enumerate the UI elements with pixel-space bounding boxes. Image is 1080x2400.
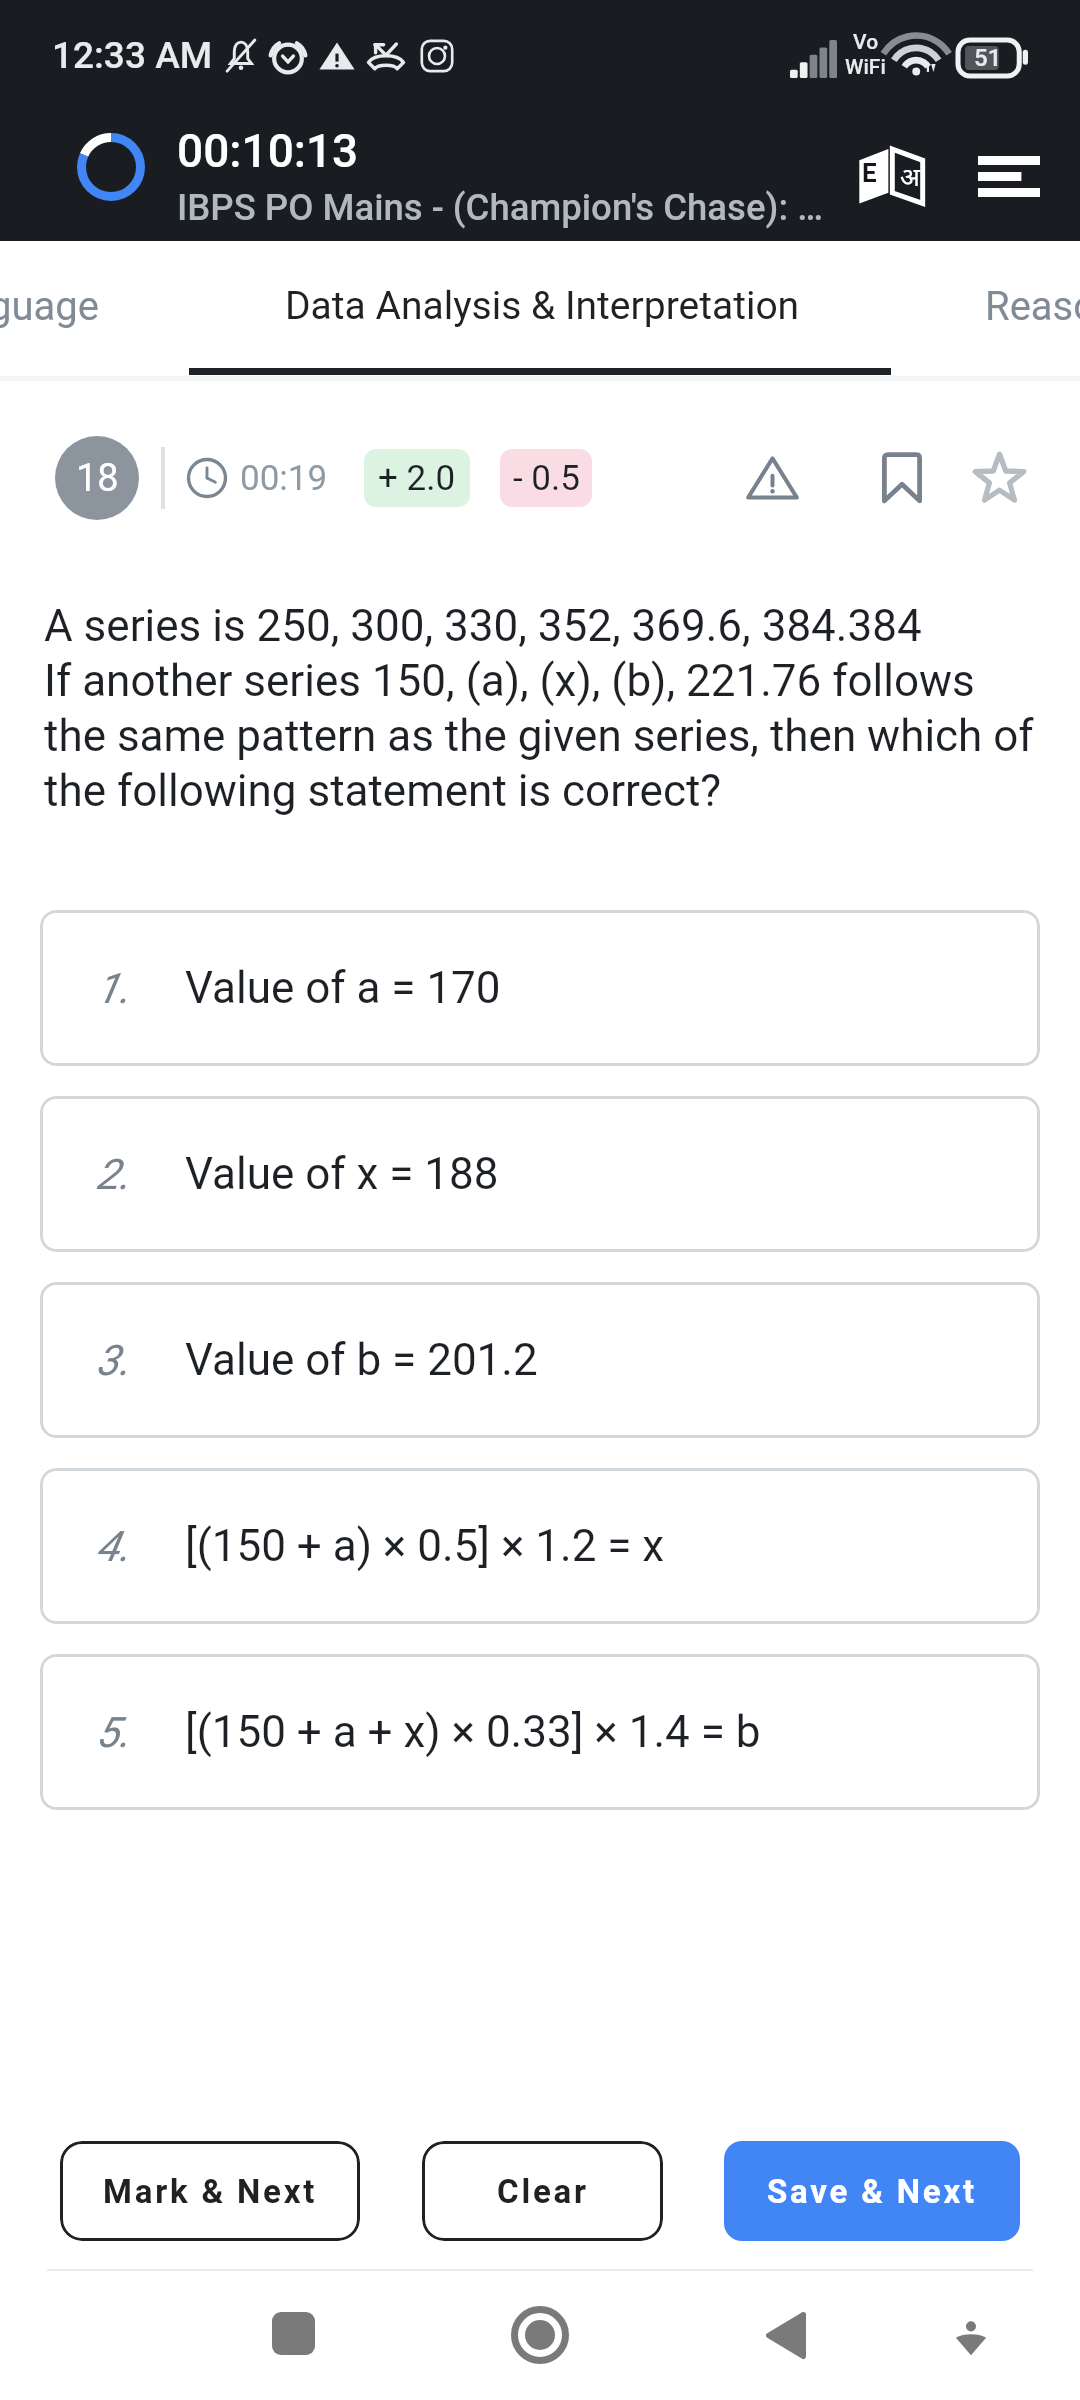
staticText: 00:19 — [240, 458, 328, 499]
staticText: 51 — [974, 44, 1002, 72]
button[interactable]: Mark & Next — [60, 2141, 360, 2241]
staticText: Data Analysis & Interpretation — [285, 283, 800, 329]
staticText: Vo — [853, 30, 879, 55]
staticText: IBPS PO Mains - (Champion's Chase): … — [177, 186, 823, 229]
staticText: 2. — [96, 1150, 130, 1199]
button[interactable]: Home — [500, 2295, 580, 2375]
staticText: Mark & Next — [103, 2172, 318, 2211]
staticText: WiFi — [845, 55, 886, 80]
button[interactable]: Favourite — [956, 435, 1042, 521]
button[interactable]: Recents — [253, 2293, 333, 2373]
staticText: [(150 + a) × 0.5] × 1.2 = x — [185, 1520, 665, 1572]
staticText: A series is 250, 300, 330, 352, 369.6, 3… — [44, 600, 1034, 816]
button[interactable]: Save & Next — [724, 2141, 1020, 2241]
staticText: Save & Next — [767, 2172, 978, 2211]
staticText: 18 — [76, 456, 119, 501]
staticText: Value of a = 170 — [185, 962, 501, 1014]
staticText: 1. — [96, 964, 130, 1013]
staticText: guage — [0, 283, 99, 330]
button[interactable]: Back — [746, 2295, 826, 2375]
staticText: 3. — [96, 1336, 130, 1385]
staticText: Value of x = 188 — [185, 1148, 499, 1200]
button[interactable]: 1. — [40, 910, 1040, 1066]
staticText: Reaso — [985, 283, 1080, 330]
button[interactable]: Menu — [961, 128, 1057, 224]
button[interactable]: Clear — [422, 2141, 663, 2241]
staticText: E — [862, 158, 877, 188]
button[interactable]: Switch language — [843, 128, 939, 224]
staticText: Value of b = 201.2 — [185, 1334, 538, 1386]
staticText: 12:33 AM — [52, 34, 213, 77]
button[interactable]: Hide keyboard — [931, 2297, 1011, 2377]
button[interactable]: 4. — [40, 1468, 1040, 1624]
button[interactable]: 3. — [40, 1282, 1040, 1438]
staticText: + 2.0 — [378, 458, 456, 499]
staticText: अ — [900, 158, 920, 193]
button[interactable]: Bookmark — [859, 435, 945, 521]
button[interactable]: 5. — [40, 1654, 1040, 1810]
button[interactable]: Report question — [729, 435, 815, 521]
staticText: 00:10:13 — [177, 124, 359, 178]
staticText: 5. — [96, 1708, 130, 1757]
button[interactable]: 2. — [40, 1096, 1040, 1252]
staticText: 4. — [96, 1522, 130, 1571]
staticText: [(150 + a + x) × 0.33] × 1.4 = b — [185, 1706, 761, 1758]
staticText: Clear — [497, 2172, 589, 2211]
staticText: - 0.5 — [513, 458, 580, 499]
